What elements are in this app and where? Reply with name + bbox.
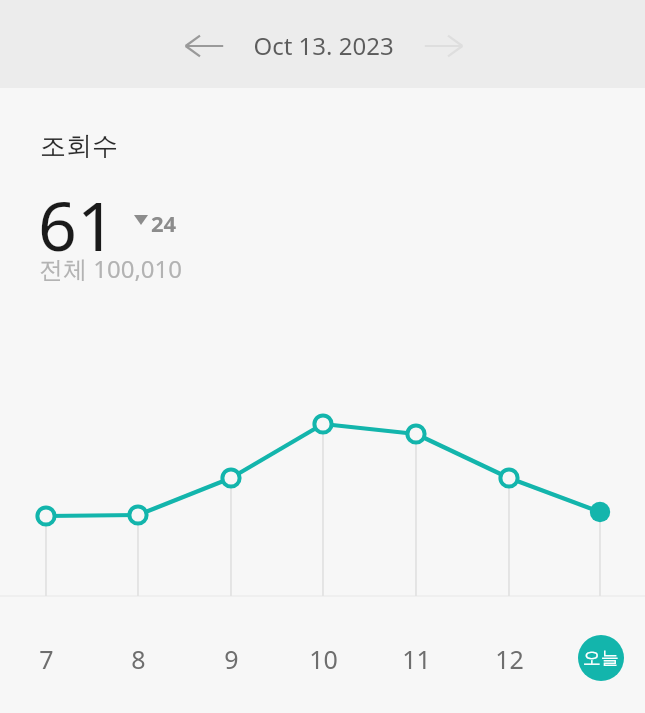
staticText: 9	[224, 642, 239, 676]
staticText: 7	[39, 642, 54, 676]
button[interactable]: Oct 13. 2023	[240, 22, 406, 68]
staticText: 조회수	[40, 130, 118, 163]
button[interactable]: 8	[112, 638, 164, 680]
staticText: Oct 13. 2023	[253, 29, 394, 62]
staticText: 61	[38, 178, 116, 271]
staticText: 8	[131, 642, 146, 676]
button[interactable]: 9	[205, 638, 257, 680]
button[interactable]: 7	[20, 638, 72, 680]
staticText: 24	[151, 208, 177, 238]
button[interactable]: 11	[390, 638, 442, 680]
staticText: 10	[309, 642, 338, 676]
button[interactable]: Previous day	[178, 26, 230, 66]
button[interactable]: 오늘	[578, 635, 624, 681]
button[interactable]: Next day	[418, 26, 470, 66]
button[interactable]: 10	[297, 638, 349, 680]
staticText: 11	[402, 642, 431, 676]
staticText: 12	[495, 642, 524, 676]
staticText: 전체 100,010	[39, 252, 183, 285]
staticText: 오늘	[583, 647, 619, 670]
button[interactable]: 12	[483, 638, 535, 680]
